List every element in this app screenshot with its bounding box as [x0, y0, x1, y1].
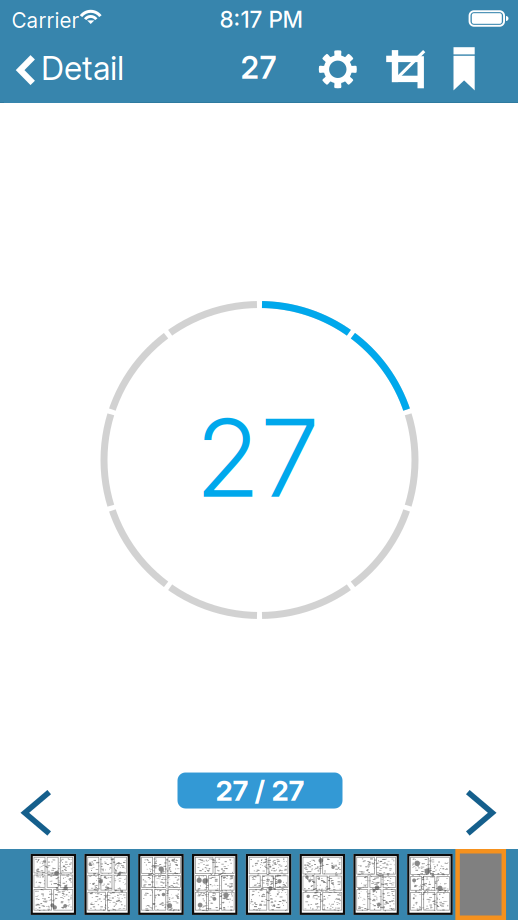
- button[interactable]: Page 19: [31, 854, 76, 915]
- button[interactable]: Page 24: [300, 854, 345, 915]
- button[interactable]: Detail: [4, 40, 130, 103]
- staticText: 27: [195, 393, 320, 523]
- button[interactable]: Bookmark: [438, 37, 490, 100]
- staticText: 27 / 27: [215, 774, 304, 807]
- button[interactable]: Page 22: [192, 854, 237, 915]
- button[interactable]: Page 25: [353, 854, 399, 915]
- button[interactable]: 27 / 27: [177, 772, 342, 808]
- button[interactable]: Page 20: [84, 854, 130, 915]
- staticText: Detail: [41, 48, 124, 88]
- button[interactable]: Page 23: [246, 854, 291, 915]
- staticText: Carrier: [11, 8, 79, 33]
- button[interactable]: Next page: [451, 775, 509, 850]
- staticText: 27: [241, 49, 277, 86]
- button[interactable]: Crop: [377, 37, 433, 100]
- button[interactable]: Current page 27: [455, 849, 506, 920]
- staticText: 8:17 PM: [219, 6, 303, 33]
- button[interactable]: Page 21: [138, 854, 184, 915]
- button[interactable]: Page 26: [407, 854, 453, 915]
- button[interactable]: Previous page: [8, 775, 66, 850]
- button[interactable]: Settings: [310, 38, 366, 101]
